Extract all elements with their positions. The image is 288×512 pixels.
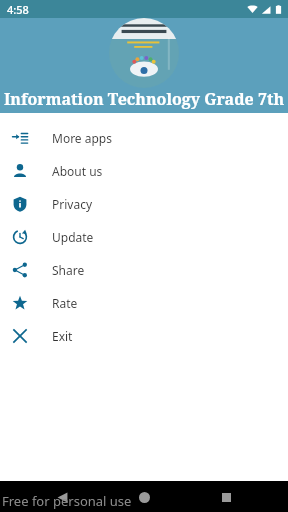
button[interactable]: About us	[0, 154, 288, 187]
button[interactable]: Rate	[0, 286, 288, 319]
staticText: More apps	[52, 130, 112, 146]
button[interactable]: Update	[0, 220, 288, 253]
button[interactable]: Privacy	[0, 187, 288, 220]
staticText: Free for personal use	[2, 492, 132, 510]
staticText: Rate	[52, 295, 78, 311]
staticText: Privacy	[52, 196, 93, 212]
button[interactable]: Share	[0, 253, 288, 286]
staticText: Update	[52, 229, 94, 245]
staticText: Share	[52, 262, 85, 278]
staticText: Exit	[52, 328, 73, 344]
button[interactable]: Back	[47, 482, 77, 512]
button[interactable]: Exit	[0, 319, 288, 352]
staticText: Information Technology Grade 7th	[0, 88, 288, 110]
button[interactable]: Home	[129, 482, 159, 512]
button[interactable]: Recent apps	[211, 482, 241, 512]
button[interactable]: More apps	[0, 121, 288, 154]
staticText: 4:58	[7, 2, 29, 17]
staticText: About us	[52, 163, 103, 179]
